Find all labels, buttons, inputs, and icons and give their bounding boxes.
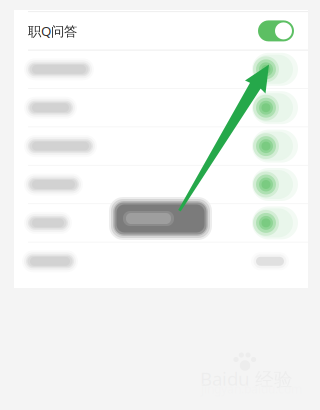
button[interactable] [14,242,308,280]
staticText: 职Q问答 [28,22,77,40]
button[interactable] [14,127,308,165]
button[interactable] [14,204,308,242]
button[interactable] [14,50,308,88]
button[interactable]: 职Q问答 [14,12,308,50]
button[interactable] [14,89,308,126]
button[interactable] [14,166,308,203]
